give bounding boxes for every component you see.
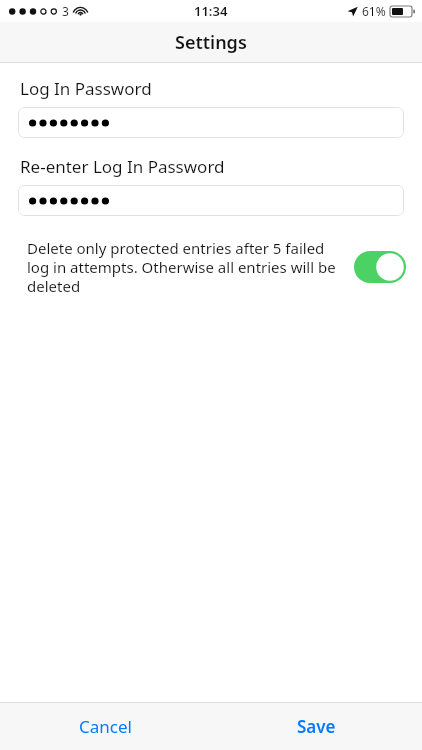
button[interactable]: Cancel [0,703,211,750]
button[interactable] [18,107,404,138]
staticText: Settings [175,30,247,55]
staticText: Log In Password [20,77,152,100]
button[interactable] [18,185,404,216]
staticText: Save [297,715,336,738]
button[interactable]: Save [211,703,422,750]
button[interactable]: Delete only protected entries after 5 fa… [27,238,406,296]
staticText: 61% [362,3,386,19]
staticText: 11:34 [194,2,228,20]
button[interactable]: Delete only protected entries toggle [354,251,406,283]
staticText: Cancel [79,715,132,738]
staticText: Re-enter Log In Password [20,155,225,178]
staticText: 3 [62,3,69,19]
staticText: Delete only protected entries after 5 fa… [27,238,346,296]
